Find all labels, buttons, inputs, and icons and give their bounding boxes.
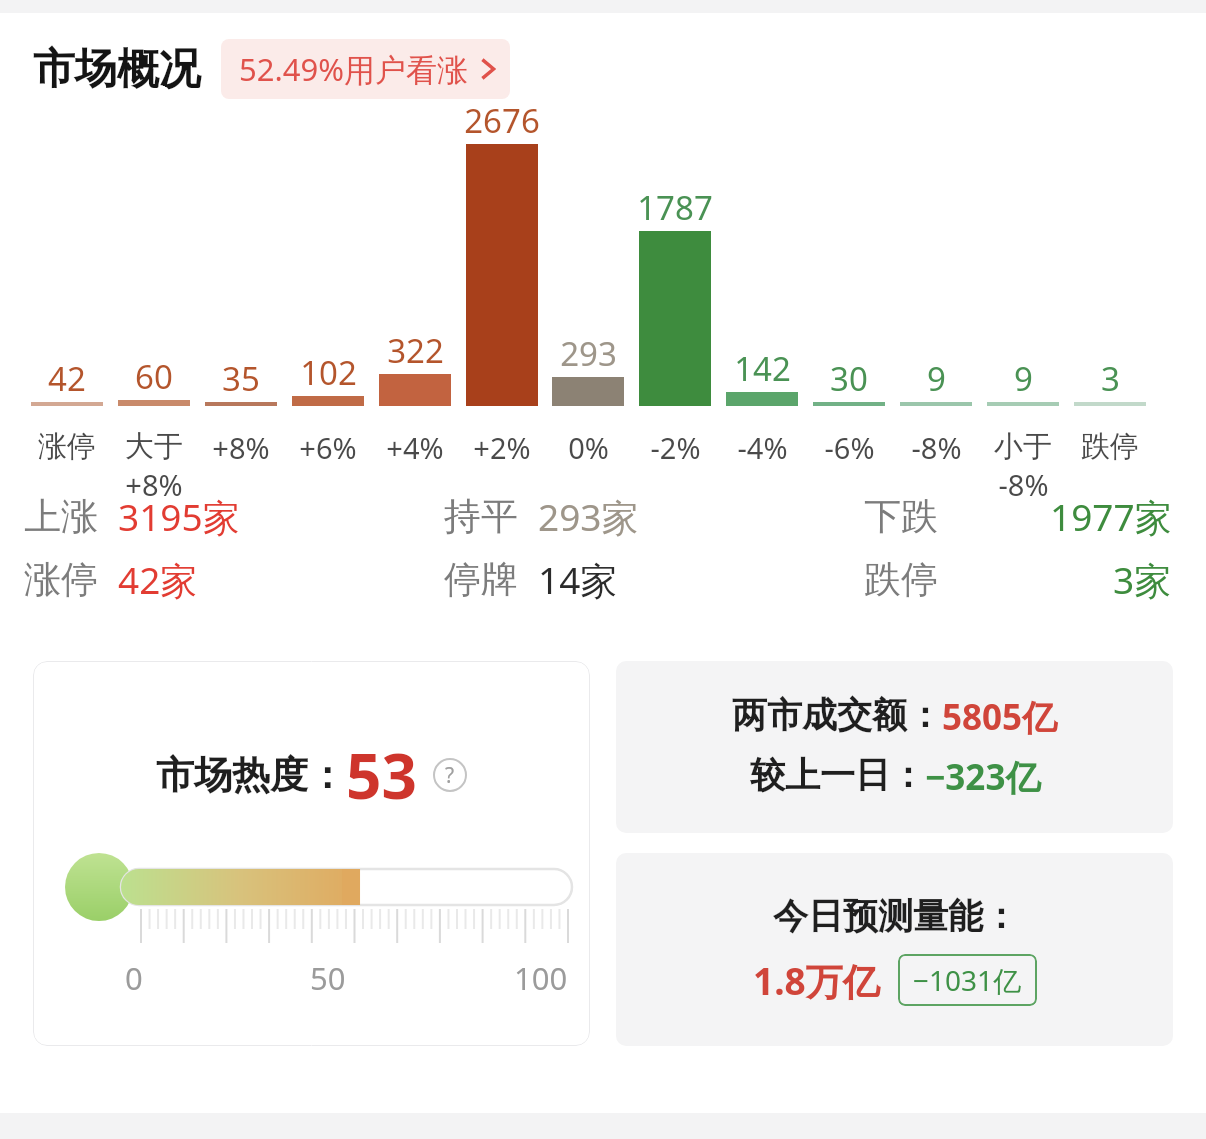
staticText: 涨停 [24, 556, 98, 603]
staticText: 两市成交额： [732, 693, 942, 737]
staticText: 较上一日： [750, 753, 925, 797]
staticText: 大于 [125, 428, 183, 465]
staticText: 上涨 [24, 493, 98, 540]
staticText: 14家 [538, 554, 618, 605]
staticText: 持平 [444, 493, 518, 540]
staticText: 9 [927, 356, 946, 401]
button[interactable]: 两市成交额： [616, 661, 1173, 833]
staticText: ? [445, 761, 455, 790]
staticText: 涨停 [38, 428, 96, 465]
staticText: 3195家 [118, 491, 240, 542]
staticText: 跌停 [1081, 428, 1139, 465]
staticText: 9 [1014, 356, 1033, 401]
staticText: −323亿 [925, 753, 1041, 801]
staticText: 2676 [464, 98, 540, 143]
staticText: 102 [300, 350, 357, 395]
staticText: 30 [830, 356, 868, 401]
staticText: 293家 [538, 491, 639, 542]
staticText: -2% [650, 428, 701, 467]
staticText: 1977家 [1050, 491, 1172, 542]
staticText: 60 [135, 354, 173, 399]
staticText: -8% [911, 428, 962, 467]
staticText: 53 [346, 733, 417, 817]
staticText: 35 [222, 356, 260, 401]
staticText: -4% [737, 428, 788, 467]
staticText: 今日预测量能： [773, 894, 1018, 938]
staticText: 142 [734, 346, 791, 391]
staticText: 小于 [994, 428, 1052, 465]
button[interactable]: 市场热度说明 [433, 758, 467, 792]
staticText: 停牌 [444, 556, 518, 603]
staticText: +8% [125, 465, 183, 504]
staticText: +4% [386, 428, 444, 467]
staticText: 52.49%用户看涨 [239, 48, 468, 90]
staticText: −1031亿 [913, 961, 1022, 999]
staticText: 100 [514, 957, 568, 999]
staticText: +2% [473, 428, 531, 467]
button[interactable]: 52.49%用户看涨 [221, 39, 510, 99]
staticText: 3家 [1113, 554, 1172, 605]
staticText: 下跌 [864, 493, 938, 540]
staticText: 322 [387, 328, 444, 373]
staticText: 1.8万亿 [753, 955, 880, 1006]
staticText: -6% [824, 428, 875, 467]
staticText: -8% [998, 465, 1049, 504]
staticText: 0 [125, 957, 143, 999]
button[interactable]: 市场热度： [33, 661, 590, 1046]
staticText: 50 [310, 957, 346, 999]
staticText: 3 [1101, 356, 1120, 401]
button[interactable]: 今日预测量能： [616, 853, 1173, 1046]
staticText: +8% [212, 428, 270, 467]
staticText: 0% [568, 428, 609, 467]
staticText: 42家 [118, 554, 198, 605]
staticText: 42 [48, 356, 86, 401]
staticText: 市场热度： [156, 751, 346, 799]
staticText: 1787 [637, 185, 713, 230]
staticText: 跌停 [864, 556, 938, 603]
staticText: 市场概况 [33, 43, 201, 96]
staticText: 293 [560, 331, 617, 376]
staticText: +6% [299, 428, 357, 467]
staticText: 5805亿 [942, 693, 1058, 741]
